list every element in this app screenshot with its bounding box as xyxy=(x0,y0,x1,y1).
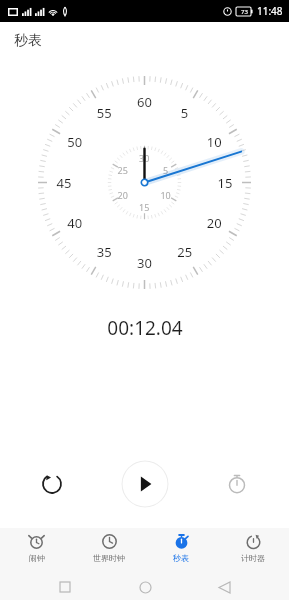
staticText: 00:12.04 xyxy=(107,315,183,341)
button[interactable]: Home xyxy=(130,574,160,600)
staticText: 秒表 xyxy=(14,32,42,50)
button[interactable]: Lap xyxy=(213,460,261,508)
button[interactable]: 秒表 xyxy=(145,528,217,574)
staticText: 11:48 xyxy=(257,4,283,18)
staticText: 闹钟 xyxy=(29,553,45,563)
button[interactable]: Recents xyxy=(50,574,80,600)
staticText: 计时器 xyxy=(241,553,265,563)
button[interactable]: Start xyxy=(121,460,169,508)
button[interactable]: 世界时钟 xyxy=(73,528,145,574)
staticText: 世界时钟 xyxy=(93,553,125,563)
staticText: 秒表 xyxy=(173,553,189,563)
staticText: 73 xyxy=(241,8,248,16)
button[interactable]: 计时器 xyxy=(217,528,289,574)
button[interactable]: Reset xyxy=(28,460,76,508)
button[interactable]: 闹钟 xyxy=(0,528,73,574)
button[interactable]: Back xyxy=(209,574,239,600)
